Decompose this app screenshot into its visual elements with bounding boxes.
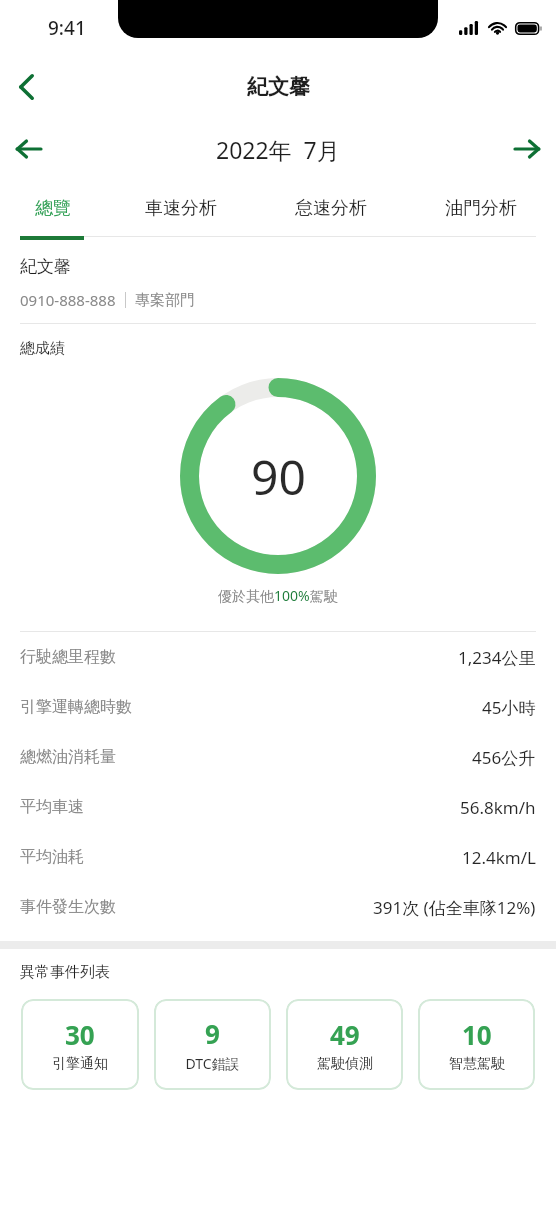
staticText: 駕駛偵測 [317, 1055, 373, 1073]
button[interactable]: Next month [498, 120, 556, 178]
staticText: 引擎運轉總時數 [20, 697, 132, 717]
staticText: DTC錯誤 [185, 1054, 240, 1073]
staticText: 456公升 [472, 746, 536, 769]
staticText: 391次 (佔全車隊12%) [373, 896, 536, 919]
staticText: 2022年 7月 [216, 134, 340, 165]
staticText: 智慧駕駛 [449, 1055, 505, 1073]
button[interactable]: 行駛總里程數 [0, 632, 556, 682]
button[interactable]: 事件發生次數 [0, 882, 556, 932]
staticText: 引擎通知 [52, 1055, 108, 1073]
button[interactable]: 平均油耗 [0, 832, 556, 882]
staticText: 異常事件列表 [20, 963, 110, 982]
staticText: 平均油耗 [20, 847, 84, 867]
staticText: 總成績 [20, 339, 65, 358]
staticText: 9:41 [48, 15, 86, 41]
button[interactable]: 30 [21, 999, 139, 1090]
staticText: 30 [65, 1017, 95, 1052]
staticText: 10 [462, 1017, 492, 1052]
staticText: 專案部門 [135, 291, 195, 310]
staticText: 優於其他100%駕駛 [218, 586, 338, 605]
staticText: 56.8km/h [460, 796, 536, 819]
staticText: 總覽 [35, 197, 71, 220]
staticText: 車速分析 [145, 197, 217, 220]
button[interactable]: 引擎運轉總時數 [0, 682, 556, 732]
button[interactable]: 總燃油消耗量 [0, 732, 556, 782]
button[interactable]: 9 [154, 999, 271, 1090]
button[interactable]: 平均車速 [0, 782, 556, 832]
staticText: 總燃油消耗量 [20, 747, 116, 767]
button[interactable]: 油門分析 [406, 180, 556, 236]
button[interactable]: 49 [286, 999, 403, 1090]
staticText: 紀文馨 [247, 74, 310, 100]
staticText: 90 [251, 444, 306, 509]
button[interactable]: Previous month [0, 120, 58, 178]
staticText: 紀文馨 [20, 256, 71, 277]
button[interactable]: Back [0, 61, 52, 113]
button[interactable]: 車速分析 [106, 180, 256, 236]
staticText: 12.4km/L [462, 846, 536, 869]
staticText: 9 [205, 1016, 220, 1051]
staticText: 怠速分析 [295, 197, 367, 220]
staticText: 1,234公里 [458, 646, 536, 669]
button[interactable]: 10 [418, 999, 535, 1090]
staticText: 45小時 [482, 696, 536, 719]
staticText: 油門分析 [445, 197, 517, 220]
button[interactable]: 怠速分析 [256, 180, 406, 236]
staticText: 0910-888-888 [20, 290, 116, 310]
staticText: 行駛總里程數 [20, 647, 116, 667]
button[interactable]: 總覽 [0, 180, 106, 236]
staticText: 49 [330, 1017, 360, 1052]
staticText: 事件發生次數 [20, 897, 116, 917]
staticText: 平均車速 [20, 797, 84, 817]
